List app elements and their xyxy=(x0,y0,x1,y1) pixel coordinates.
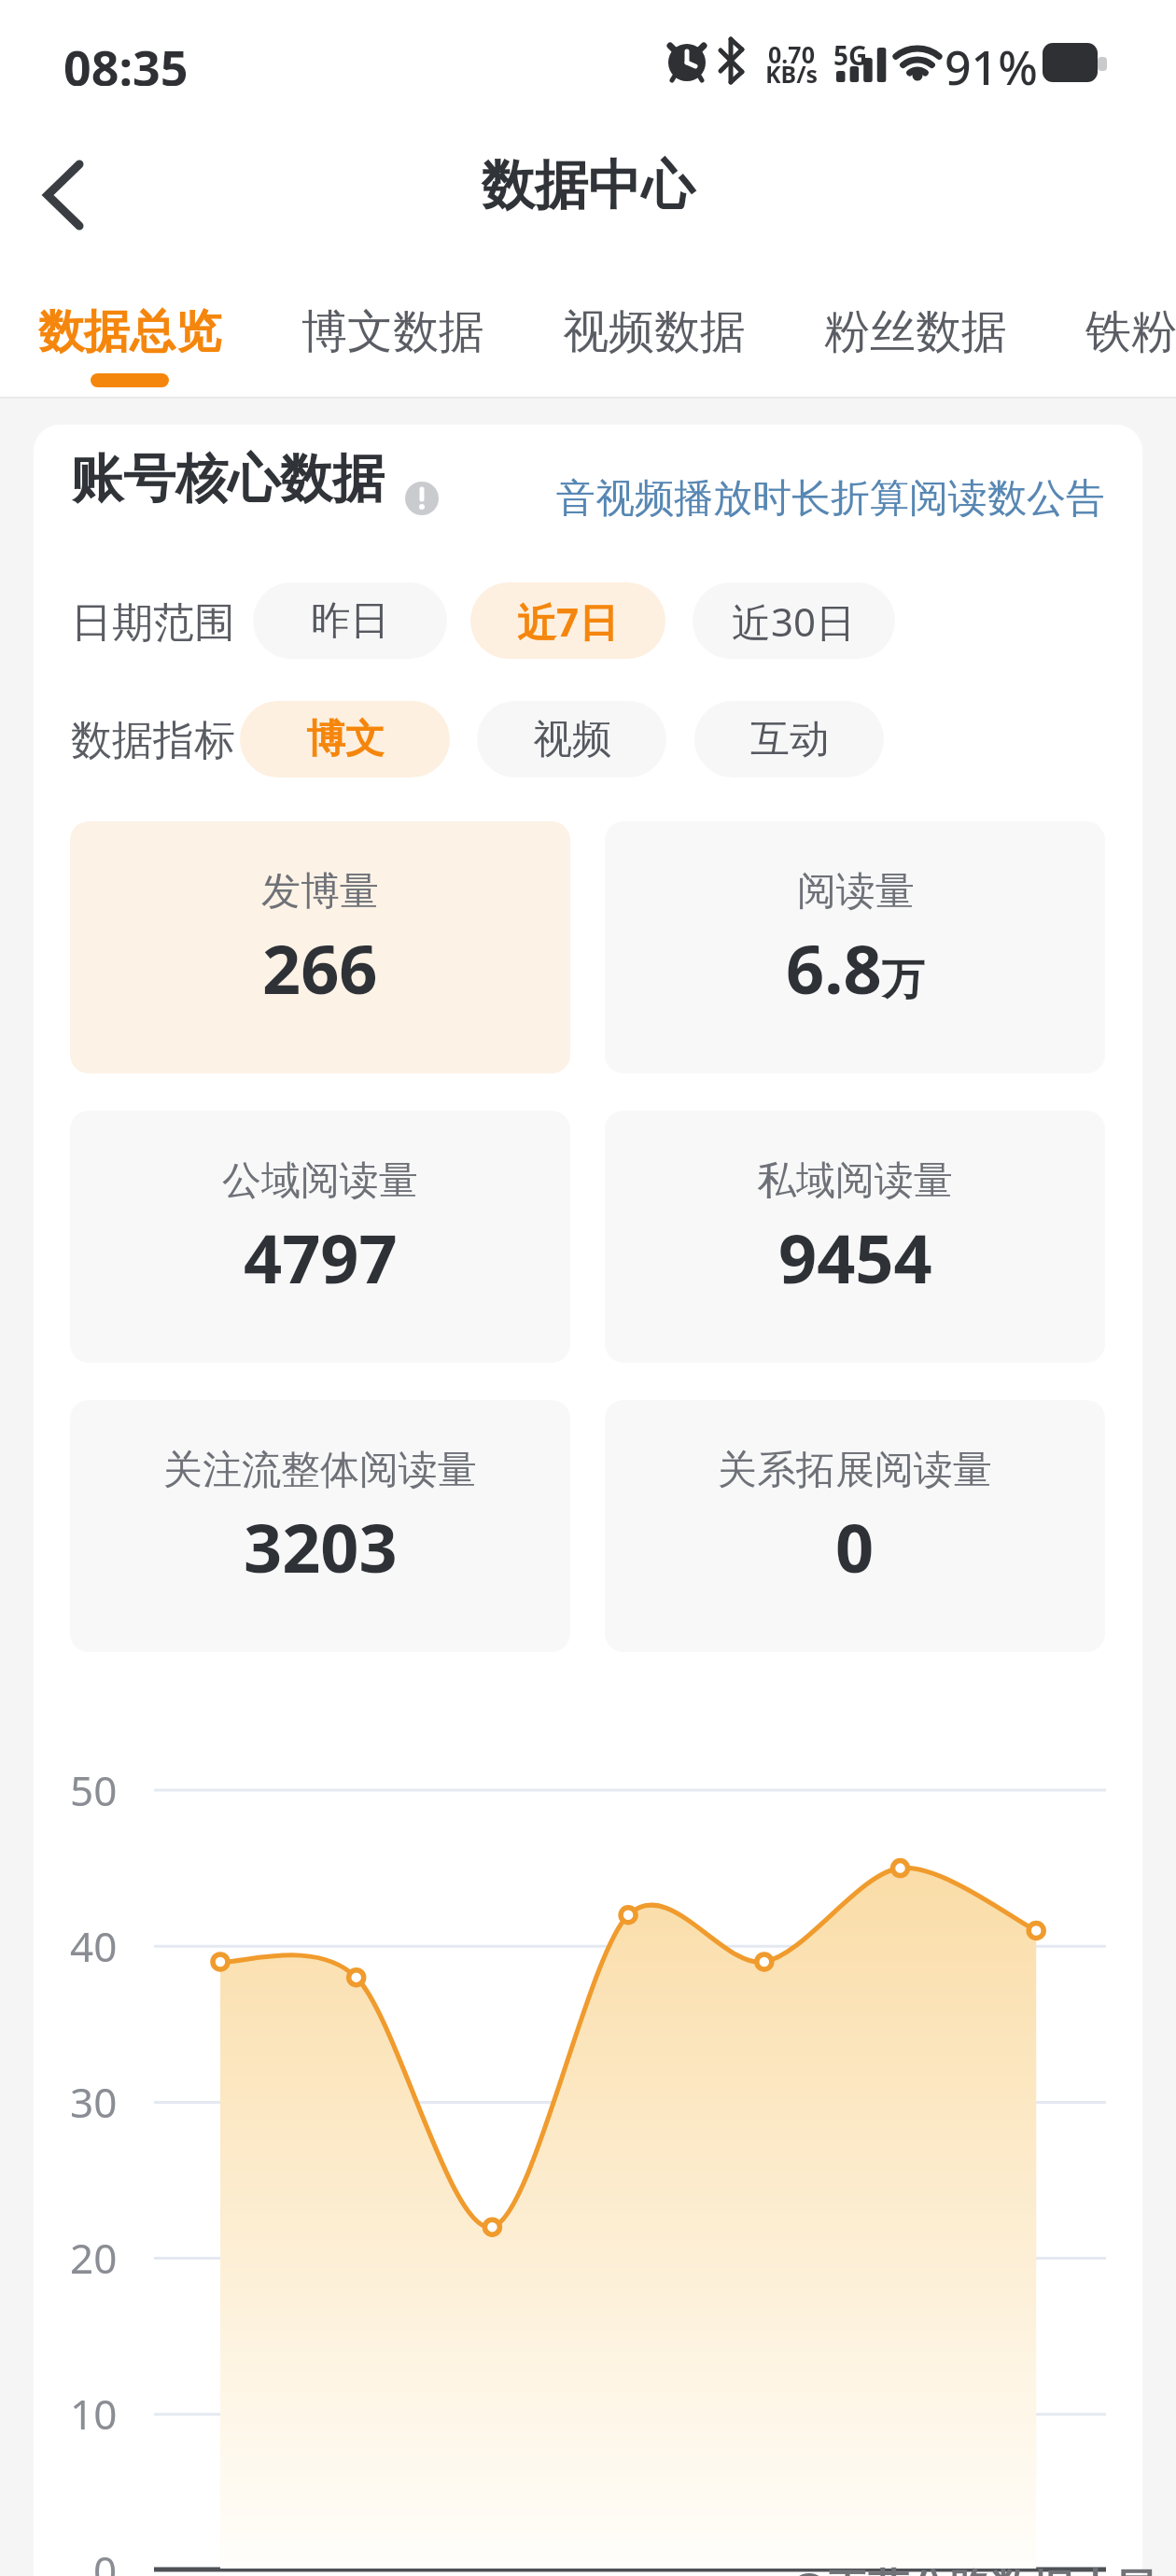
staticText: 4797 xyxy=(244,1211,398,1303)
staticText: 08:35 xyxy=(63,34,189,86)
staticText: 视频 xyxy=(533,715,611,764)
staticText: 昨日 xyxy=(311,596,389,646)
staticText: 铁粉数据 xyxy=(1085,303,1176,361)
staticText: 关注流整体阅读量 xyxy=(163,1446,477,1495)
staticText: 9454 xyxy=(778,1211,932,1303)
staticText: 10 xyxy=(70,2386,118,2442)
button[interactable]: 关系拓展阅读量 xyxy=(605,1400,1105,1652)
staticText: 5G xyxy=(833,37,868,65)
staticText: 30 xyxy=(70,2074,118,2130)
staticText: 0 xyxy=(835,1501,875,1592)
staticText: 阅读量 xyxy=(797,867,915,917)
staticText: 博文 xyxy=(306,715,385,764)
button[interactable]: 近7日 xyxy=(470,582,665,659)
button[interactable]: 博文 xyxy=(240,701,450,777)
staticText: 近7日 xyxy=(517,595,619,648)
button[interactable]: 铁粉数据 xyxy=(1084,295,1176,370)
staticText: KB/s xyxy=(765,58,819,84)
button[interactable]: 博文数据 xyxy=(300,295,486,370)
staticText: 50 xyxy=(70,1762,118,1818)
button[interactable]: 互动 xyxy=(694,701,884,777)
button[interactable]: 音视频播放时长折算阅读数公告 xyxy=(519,470,1105,526)
staticText: 账号核心数据 xyxy=(71,446,385,504)
staticText: 数据中心 xyxy=(482,152,694,219)
staticText: 私域阅读量 xyxy=(757,1156,953,1206)
button[interactable]: 视频 xyxy=(477,701,666,777)
staticText: 91% xyxy=(945,35,1038,88)
button[interactable]: 昨日 xyxy=(253,582,447,659)
button[interactable]: 视频数据 xyxy=(561,295,748,370)
staticText: 互动 xyxy=(750,715,829,764)
staticText: 0.70 xyxy=(768,38,815,64)
button[interactable]: 粉丝数据 xyxy=(822,295,1009,370)
staticText: 近30日 xyxy=(732,595,856,648)
staticText: 数据指标 xyxy=(71,715,235,766)
staticText: 音视频播放时长折算阅读数公告 xyxy=(556,474,1105,524)
staticText: 266 xyxy=(262,922,378,1014)
button[interactable]: 近30日 xyxy=(693,582,895,659)
staticText: 3203 xyxy=(244,1501,398,1592)
button[interactable]: 阅读量 xyxy=(605,821,1105,1073)
staticText: 日期范围 xyxy=(71,597,235,649)
button[interactable]: 关注流整体阅读量 xyxy=(70,1400,570,1652)
staticText: 数据总览 xyxy=(38,303,221,361)
button[interactable]: 公域阅读量 xyxy=(70,1111,570,1363)
button[interactable]: 私域阅读量 xyxy=(605,1111,1105,1363)
staticText: @王蓝公路数据小屋2025 xyxy=(790,2559,1176,2576)
staticText: 博文数据 xyxy=(301,303,484,361)
staticText: 0 xyxy=(93,2542,118,2576)
staticText: 40 xyxy=(70,1918,118,1974)
button[interactable]: 发博量 xyxy=(70,821,570,1073)
staticText: 视频数据 xyxy=(563,303,746,361)
button[interactable] xyxy=(405,482,439,515)
button[interactable]: 数据总览 xyxy=(36,295,223,370)
staticText: 关系拓展阅读量 xyxy=(718,1446,992,1495)
staticText: 20 xyxy=(70,2230,118,2286)
staticText: 粉丝数据 xyxy=(824,303,1007,361)
staticText: 发博量 xyxy=(261,867,379,917)
staticText: 公域阅读量 xyxy=(222,1156,418,1206)
staticText: 6.8万 xyxy=(786,922,925,1014)
button[interactable] xyxy=(37,154,93,236)
